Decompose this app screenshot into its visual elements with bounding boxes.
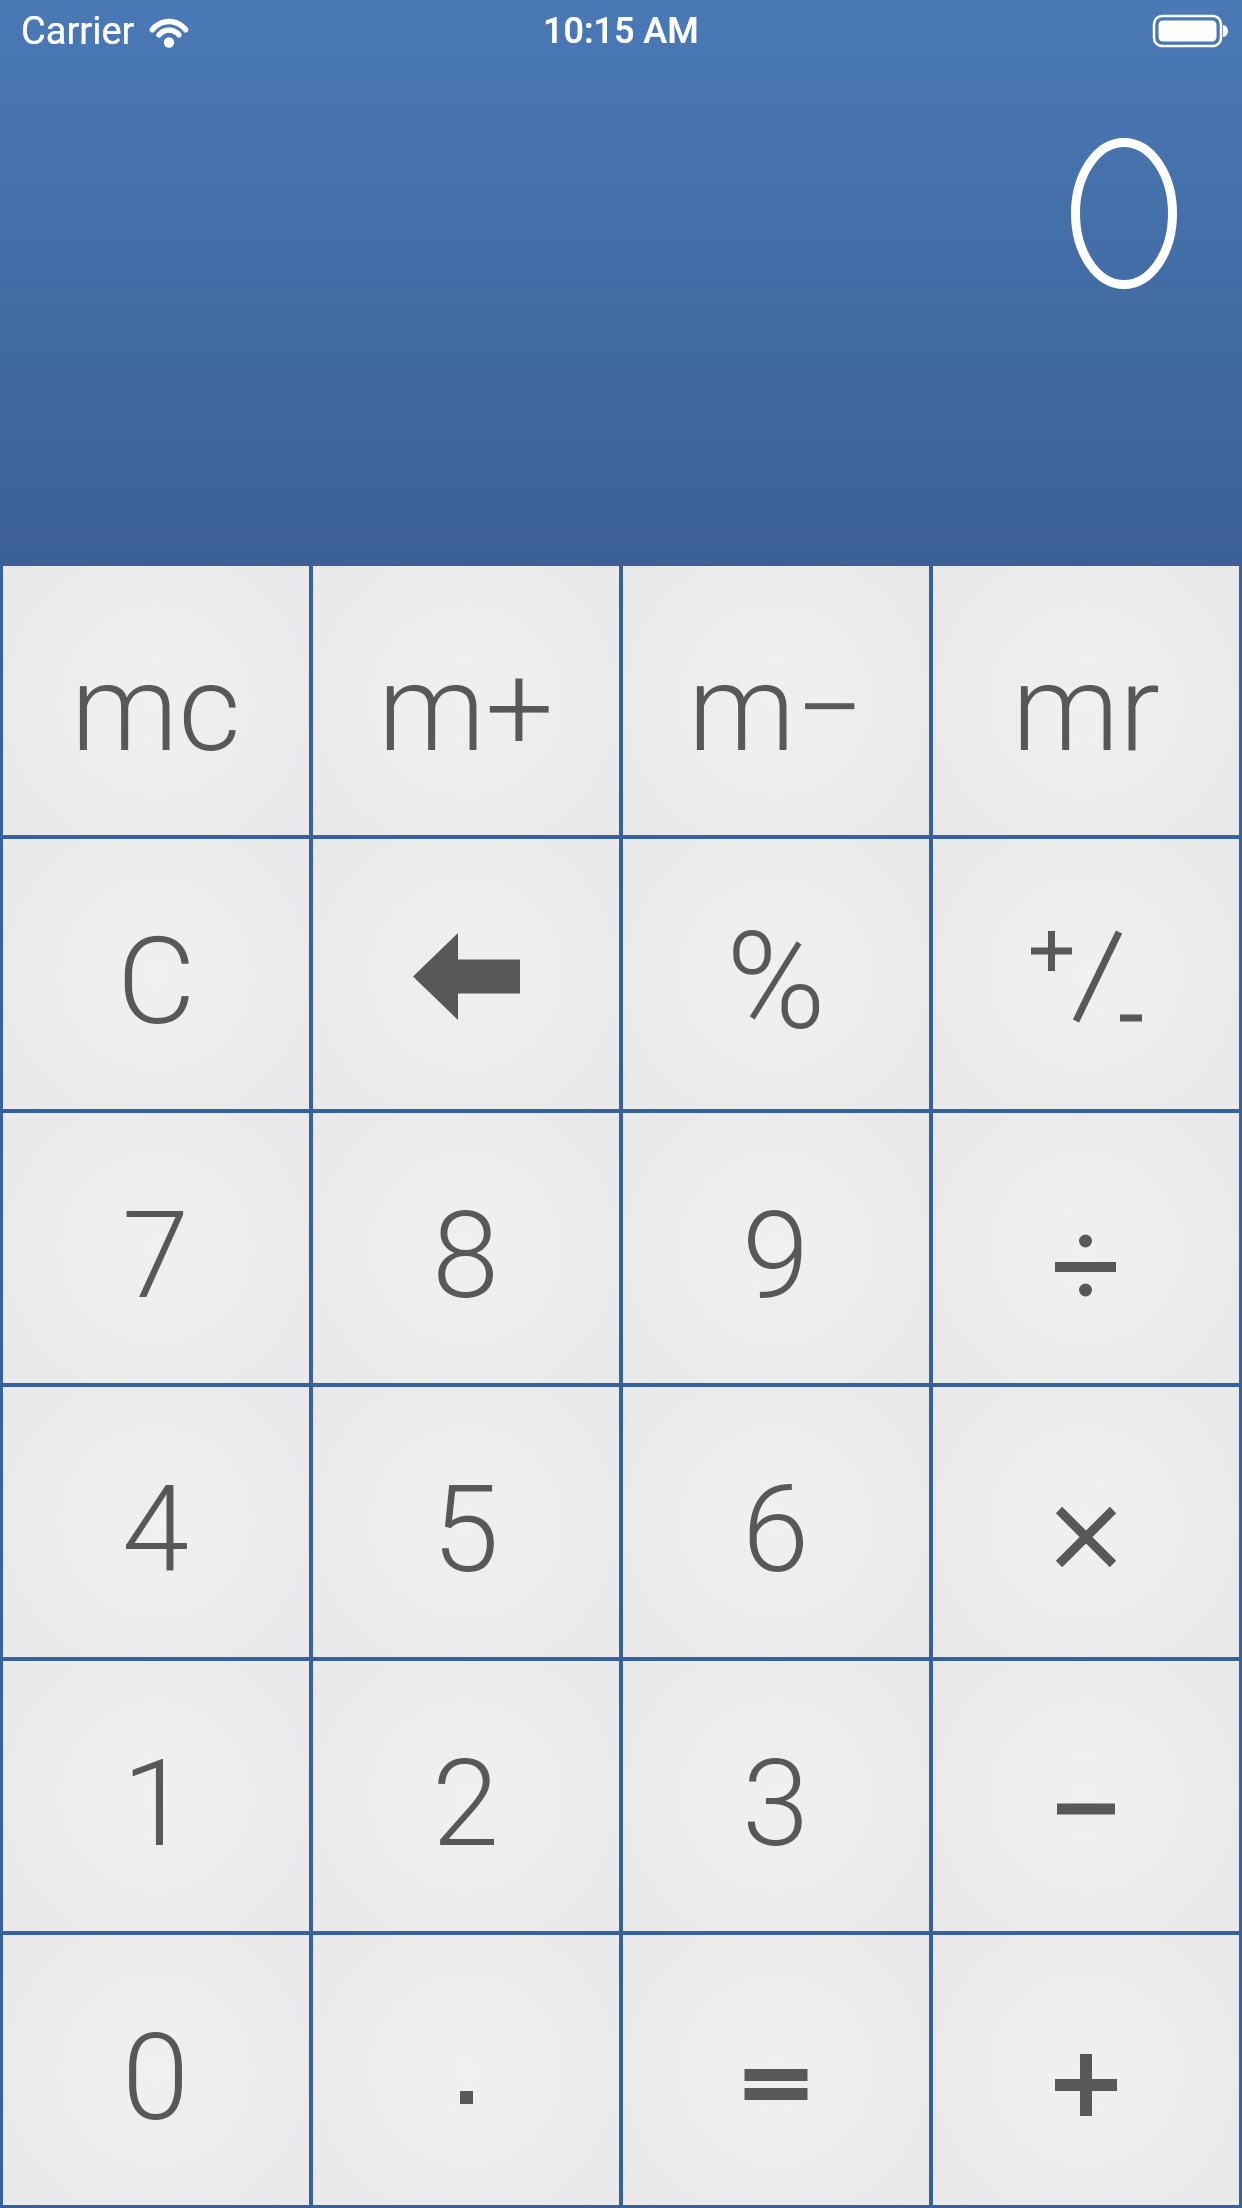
button[interactable]: 3 <box>623 1661 929 1931</box>
staticText: 2 <box>432 1733 500 1875</box>
button[interactable]: m+ <box>313 566 619 835</box>
staticText: % <box>726 903 826 1061</box>
button[interactable]: 8 <box>313 1113 619 1383</box>
button[interactable]: mr <box>933 566 1239 835</box>
staticText: 5 <box>432 1459 500 1601</box>
staticText: m− <box>688 638 865 780</box>
staticText: mr <box>1012 638 1161 780</box>
staticText: 8 <box>432 1185 500 1327</box>
staticText: m+ <box>378 638 554 780</box>
button[interactable]: 6 <box>623 1387 929 1657</box>
button[interactable]: % <box>623 839 929 1109</box>
button[interactable]: 5 <box>313 1387 619 1657</box>
button[interactable] <box>623 1935 929 2205</box>
button[interactable]: 9 <box>623 1113 929 1383</box>
button[interactable]: 7 <box>3 1113 309 1383</box>
staticText: mc <box>71 638 241 780</box>
staticText: 7 <box>122 1185 190 1327</box>
button[interactable] <box>313 839 619 1109</box>
staticText: C <box>117 911 196 1053</box>
staticText: 9 <box>742 1185 810 1327</box>
staticText: 6 <box>742 1459 810 1601</box>
button[interactable] <box>933 1387 1239 1657</box>
button[interactable]: mc <box>3 566 309 835</box>
button[interactable]: m− <box>623 566 929 835</box>
button[interactable]: 2 <box>313 1661 619 1931</box>
button[interactable]: C <box>3 839 309 1109</box>
button[interactable] <box>933 1935 1239 2205</box>
staticText: 3 <box>742 1733 810 1875</box>
staticText: 0 <box>122 2007 190 2149</box>
button[interactable] <box>933 1661 1239 1931</box>
staticText: 4 <box>122 1459 190 1601</box>
staticText: Carrier <box>21 9 135 54</box>
staticText: 1 <box>122 1733 190 1875</box>
button[interactable] <box>933 839 1239 1109</box>
button[interactable] <box>313 1935 619 2205</box>
button[interactable]: 1 <box>3 1661 309 1931</box>
button[interactable]: 0 <box>3 1935 309 2205</box>
button[interactable]: 4 <box>3 1387 309 1657</box>
button[interactable] <box>933 1113 1239 1383</box>
staticText: 10:15 AM <box>543 10 699 52</box>
